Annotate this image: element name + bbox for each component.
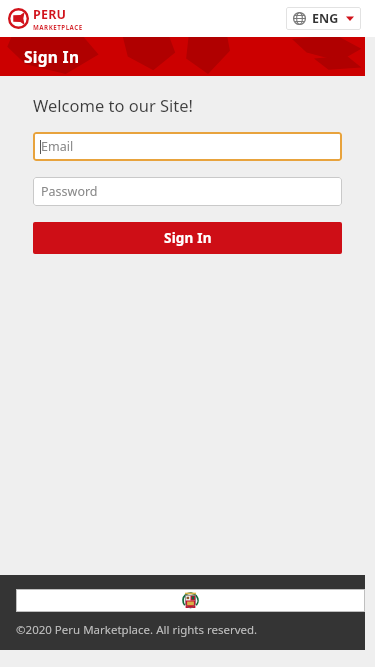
staticText: Welcome to our Site!: [33, 94, 194, 116]
staticText: Email: [41, 138, 74, 155]
button[interactable]: PERU: [8, 6, 83, 31]
button[interactable]: Password: [33, 177, 342, 206]
staticText: ENG: [312, 10, 339, 27]
staticText: ©2020 Peru Marketplace. All rights reser…: [16, 622, 258, 638]
staticText: PERU: [33, 6, 67, 23]
button[interactable]: Ministerio de Comercio Exterior y Turism…: [16, 589, 365, 612]
staticText: Sign In: [24, 46, 80, 67]
staticText: Sign In: [164, 229, 212, 247]
button[interactable]: Select language, English: [286, 7, 361, 30]
staticText: MARKETPLACE: [33, 23, 83, 31]
button[interactable]: Sign In: [33, 222, 342, 254]
staticText: Password: [41, 183, 98, 200]
button[interactable]: Email: [33, 132, 342, 161]
